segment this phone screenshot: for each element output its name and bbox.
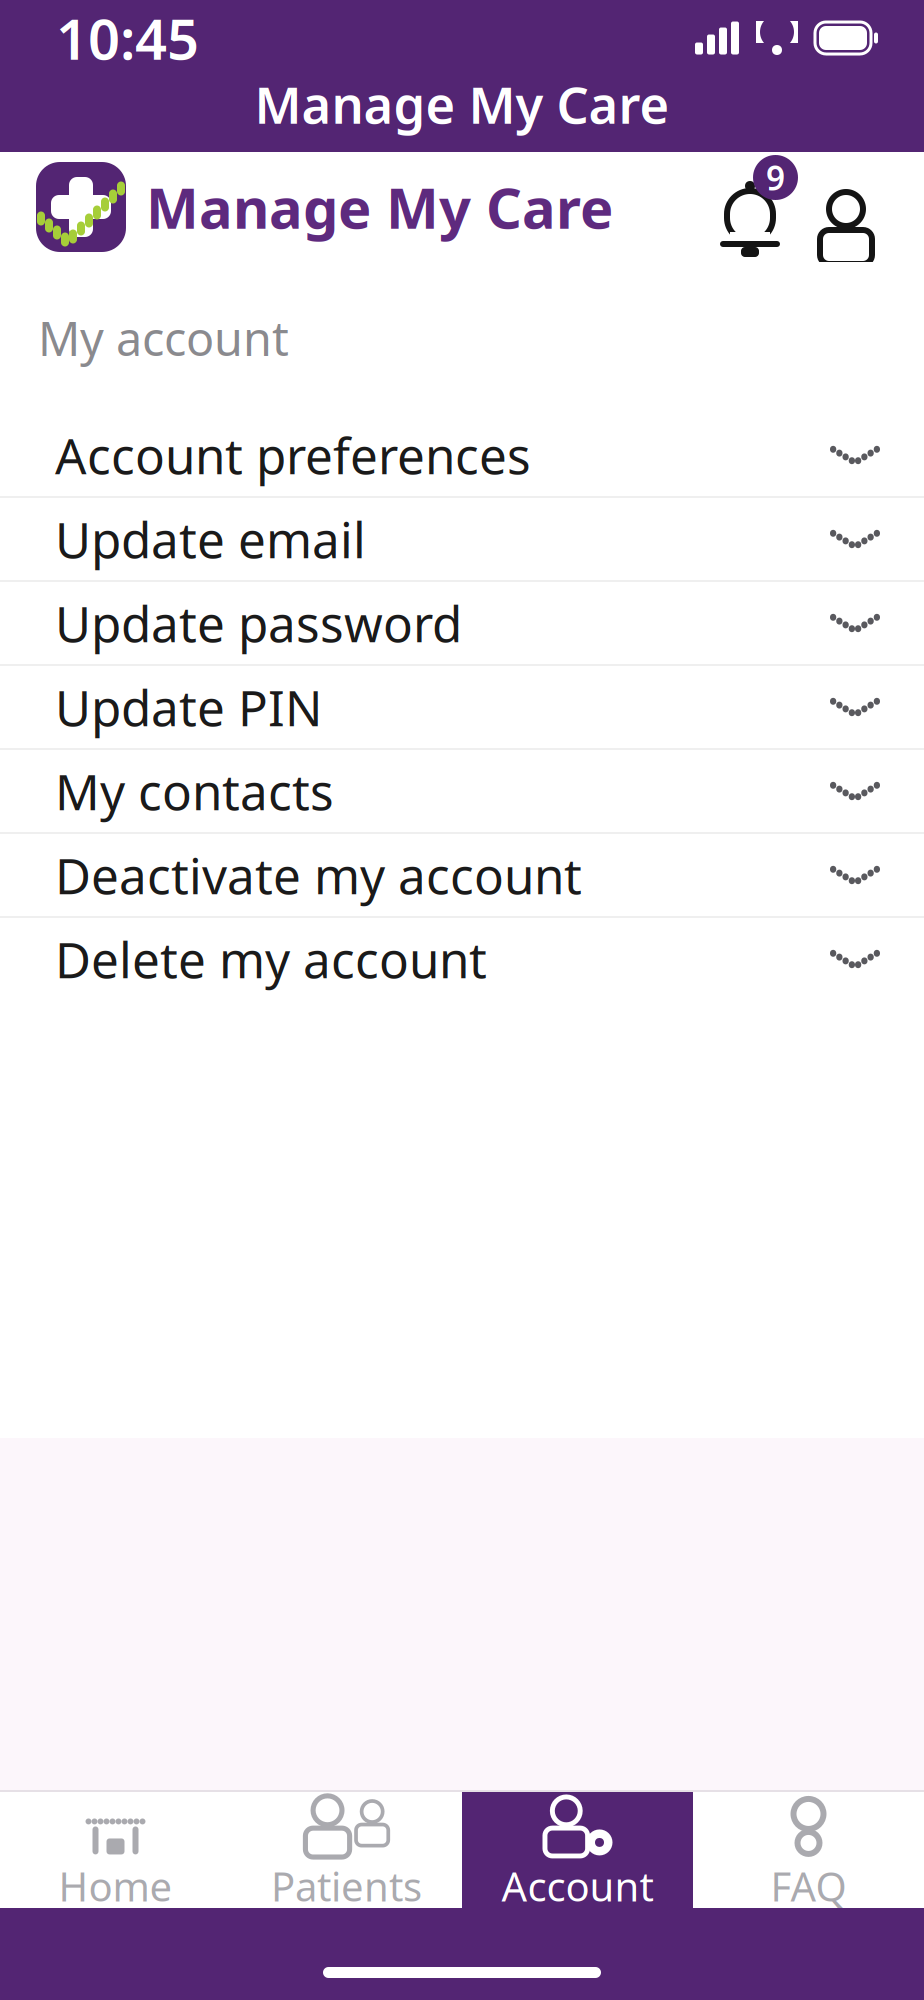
button[interactable]: Update email bbox=[0, 498, 924, 580]
staticText: Manage My Care bbox=[146, 170, 613, 244]
staticText: 10:45 bbox=[56, 1, 199, 75]
staticText: Delete my account bbox=[55, 926, 487, 992]
staticText: Patients bbox=[271, 1859, 422, 1912]
button[interactable]: Account preferences bbox=[0, 414, 924, 496]
staticText: Update email bbox=[55, 506, 366, 572]
staticText: FAQ bbox=[770, 1859, 846, 1912]
button[interactable]: Account bbox=[462, 1792, 693, 1908]
button[interactable]: FAQ bbox=[693, 1792, 924, 1908]
button[interactable]: Home bbox=[0, 1792, 231, 1908]
staticText: Deactivate my account bbox=[55, 842, 582, 908]
button[interactable]: Profile bbox=[798, 155, 894, 259]
staticText: My account bbox=[38, 307, 289, 369]
staticText: Update PIN bbox=[55, 674, 322, 740]
button[interactable]: Update PIN bbox=[0, 666, 924, 748]
staticText: Account bbox=[501, 1859, 653, 1912]
button[interactable]: Patients bbox=[231, 1792, 462, 1908]
button[interactable]: Deactivate my account bbox=[0, 834, 924, 916]
staticText: Update password bbox=[55, 590, 462, 656]
staticText: Account preferences bbox=[55, 422, 531, 488]
staticText: Home bbox=[58, 1859, 172, 1912]
button[interactable]: Notifications, 9 unread bbox=[702, 155, 798, 259]
button[interactable]: My contacts bbox=[0, 750, 924, 832]
staticText: Manage My Care bbox=[254, 70, 669, 138]
staticText: 9 bbox=[766, 155, 785, 200]
staticText: My contacts bbox=[55, 758, 334, 824]
button[interactable]: Update password bbox=[0, 582, 924, 664]
button[interactable]: Delete my account bbox=[0, 918, 924, 1000]
